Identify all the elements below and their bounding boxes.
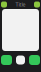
staticText: Title (15, 1, 25, 8)
